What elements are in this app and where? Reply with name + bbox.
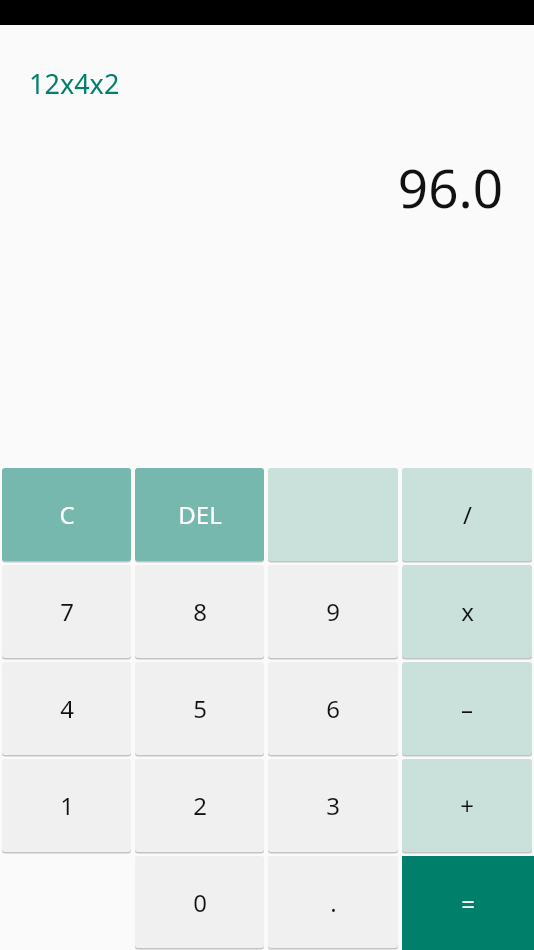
staticText: 5 [193,692,207,725]
button[interactable]: 4 [2,662,131,755]
button[interactable]: + [402,759,532,852]
staticText: DEL [178,498,222,531]
staticText: 3 [326,789,340,822]
staticText: 96.0 [397,151,503,223]
staticText: 9 [326,595,340,628]
button[interactable]: = [402,856,534,950]
button[interactable]: C [2,468,131,561]
staticText: – [461,692,473,725]
button[interactable]: . [268,856,398,948]
staticText: + [460,789,474,822]
staticText: = [461,887,475,920]
staticText: 7 [60,595,74,628]
button[interactable]: / [402,468,532,561]
button[interactable]: x [402,565,532,658]
staticText: 0 [193,886,207,919]
button[interactable]: 6 [268,662,398,755]
button[interactable]: 9 [268,565,398,658]
button[interactable]: 3 [268,759,398,852]
button[interactable]: – [402,662,532,755]
staticText: 4 [60,692,74,725]
button[interactable]: 5 [135,662,264,755]
staticText: 8 [193,595,207,628]
staticText: x [461,595,474,628]
staticText: C [59,498,75,531]
button[interactable]: 2 [135,759,264,852]
button[interactable]: 1 [2,759,131,852]
button[interactable]: 8 [135,565,264,658]
button[interactable]: 0 [135,856,264,948]
staticText: 6 [326,692,340,725]
staticText: 2 [193,789,207,822]
staticText: . [330,886,337,919]
staticText: 12x4x2 [29,65,120,102]
staticText: 1 [60,789,74,822]
button[interactable]: 7 [2,565,131,658]
staticText: / [463,498,472,531]
button[interactable]: DEL [135,468,264,561]
